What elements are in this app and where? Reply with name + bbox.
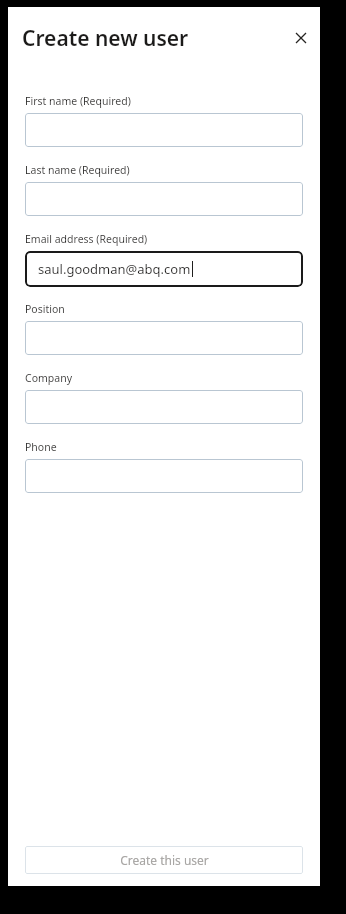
staticText: Last name (Required) xyxy=(25,163,130,177)
staticText: Phone xyxy=(25,440,57,454)
staticText: Company xyxy=(25,371,72,385)
staticText: First name (Required) xyxy=(25,94,131,108)
staticText: Email address (Required) xyxy=(25,232,148,246)
button[interactable] xyxy=(25,113,303,147)
staticText: Create this user xyxy=(120,852,209,868)
staticText: saul.goodman@abq.com xyxy=(38,260,191,278)
button[interactable] xyxy=(25,182,303,216)
button[interactable]: Create this user xyxy=(25,846,303,874)
button[interactable] xyxy=(25,459,303,493)
button[interactable]: saul.goodman@abq.com xyxy=(25,251,303,287)
button[interactable] xyxy=(25,321,303,355)
button[interactable] xyxy=(25,390,303,424)
staticText: Position xyxy=(25,302,65,316)
button[interactable]: Close xyxy=(287,24,315,52)
staticText: Create new user xyxy=(22,24,189,53)
